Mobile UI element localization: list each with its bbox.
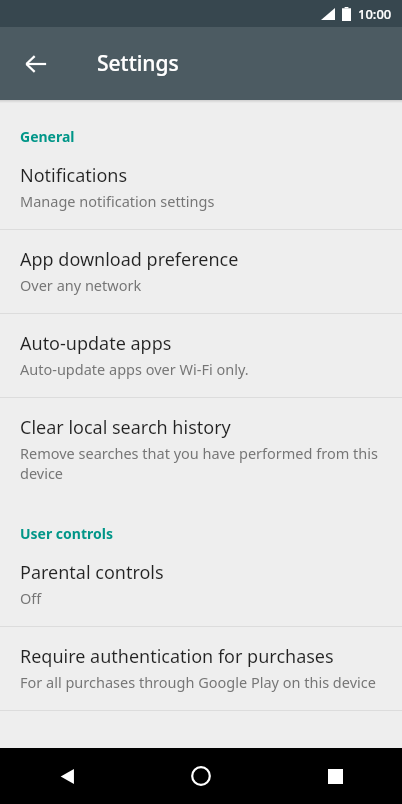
staticText: For all purchases through Google Play on… xyxy=(20,672,376,692)
button[interactable]: Notifications xyxy=(0,146,402,229)
button[interactable]: Recent apps xyxy=(268,748,402,804)
button[interactable]: Auto-update apps xyxy=(0,314,402,397)
staticText: Manage notification settings xyxy=(20,191,215,211)
button[interactable]: Back xyxy=(12,40,60,88)
staticText: Auto-update apps over Wi-Fi only. xyxy=(20,359,249,379)
staticText: Over any network xyxy=(20,275,142,295)
staticText: Remove searches that you have performed … xyxy=(20,443,382,483)
staticText: User controls xyxy=(20,524,113,543)
button[interactable]: App download preference xyxy=(0,230,402,313)
staticText: Clear local search history xyxy=(20,415,231,440)
staticText: General xyxy=(20,127,75,146)
staticText: Off xyxy=(20,588,42,608)
button[interactable]: Parental controls xyxy=(0,543,402,626)
staticText: 10:00 xyxy=(358,5,392,23)
button[interactable]: Back xyxy=(0,748,134,804)
staticText: Auto-update apps xyxy=(20,331,172,356)
staticText: Settings xyxy=(97,49,179,78)
staticText: Parental controls xyxy=(20,560,164,585)
button[interactable]: Home xyxy=(134,748,268,804)
staticText: Notifications xyxy=(20,163,128,188)
button[interactable]: Require authentication for purchases xyxy=(0,627,402,710)
staticText: App download preference xyxy=(20,247,239,272)
staticText: Require authentication for purchases xyxy=(20,644,334,669)
button[interactable]: Clear local search history xyxy=(0,398,402,501)
